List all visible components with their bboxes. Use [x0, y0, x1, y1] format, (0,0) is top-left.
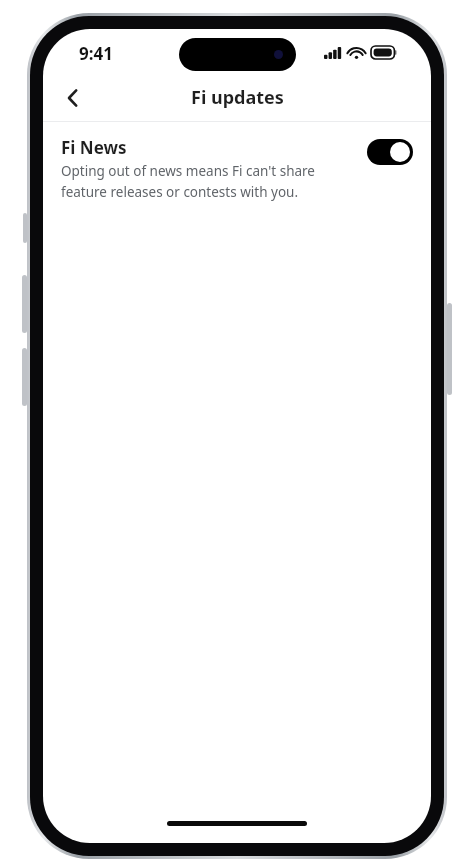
button[interactable]: Fi News — [43, 122, 431, 215]
staticText: Fi News — [61, 136, 127, 159]
staticText: Fi updates — [191, 85, 284, 110]
button[interactable]: Fi News toggle — [367, 139, 413, 165]
staticText: 9:41 — [79, 42, 113, 65]
button[interactable]: Back — [51, 76, 95, 120]
staticText: Opting out of news means Fi can't share … — [61, 162, 353, 201]
